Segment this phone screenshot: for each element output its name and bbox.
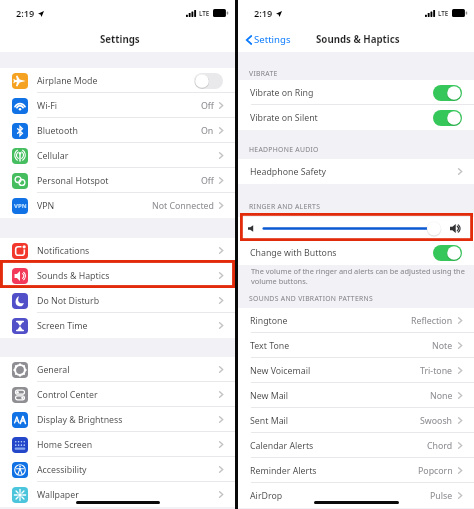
staticText: Bluetooth xyxy=(37,125,78,137)
staticText: Vibrate on Ring xyxy=(250,87,314,99)
staticText: Pulse xyxy=(430,490,453,502)
staticText: General xyxy=(37,364,70,376)
staticText: Home Screen xyxy=(37,439,93,451)
staticText: Cellular xyxy=(37,150,69,162)
staticText: LTE xyxy=(438,9,449,17)
staticText: RINGER AND ALERTS xyxy=(249,202,321,211)
button[interactable]: Notifications xyxy=(0,238,235,263)
button[interactable]: VPN xyxy=(0,193,235,218)
button[interactable]: Wallpaper xyxy=(0,482,235,507)
staticText: LTE xyxy=(199,9,210,17)
button[interactable]: Control Center xyxy=(0,382,235,407)
staticText: New Mail xyxy=(250,390,289,402)
button[interactable]: Accessibility xyxy=(0,457,235,482)
staticText: Accessibility xyxy=(37,464,87,476)
button[interactable]: Switch on xyxy=(433,85,462,101)
staticText: Vibrate on Silent xyxy=(250,112,318,124)
staticText: Airplane Mode xyxy=(37,75,98,87)
staticText: The volume of the ringer and alerts can … xyxy=(251,266,465,276)
staticText: Do Not Disturb xyxy=(37,295,100,307)
button[interactable]: Wi-Fi xyxy=(0,93,235,118)
staticText: Display & Brightness xyxy=(37,414,123,426)
staticText: HEADPHONE AUDIO xyxy=(249,145,319,154)
staticText: Wi-Fi xyxy=(37,100,58,112)
button[interactable]: Ringtone xyxy=(238,308,474,333)
staticText: VPN xyxy=(37,200,55,212)
staticText: On xyxy=(201,125,214,137)
button[interactable]: Airplane Mode xyxy=(0,68,235,93)
staticText: Off xyxy=(201,100,214,112)
button[interactable]: Personal Hotspot xyxy=(0,168,235,193)
staticText: Headphone Safety xyxy=(250,166,327,178)
button[interactable]: Do Not Disturb xyxy=(0,288,235,313)
staticText: 2:19 xyxy=(16,7,35,20)
button[interactable]: Text Tone xyxy=(238,333,474,358)
button[interactable]: Reminder Alerts xyxy=(238,458,474,483)
button[interactable]: Headphone Safety xyxy=(238,159,474,184)
button[interactable]: Home Screen xyxy=(0,432,235,457)
staticText: AirDrop xyxy=(250,490,283,502)
button[interactable]: Settings xyxy=(244,30,293,49)
button[interactable]: General xyxy=(0,357,235,382)
button[interactable]: Switch on xyxy=(433,110,462,126)
staticText: Reminder Alerts xyxy=(250,465,317,477)
staticText: Change with Buttons xyxy=(250,247,337,259)
staticText: New Voicemail xyxy=(250,365,311,377)
button[interactable]: Vibrate on Ring xyxy=(238,80,474,105)
button[interactable]: Switch off xyxy=(194,73,223,89)
button[interactable]: Cellular xyxy=(0,143,235,168)
button[interactable]: New Voicemail xyxy=(238,358,474,383)
staticText: Off xyxy=(201,175,214,187)
staticText: volume buttons. xyxy=(251,276,308,286)
button[interactable]: New Mail xyxy=(238,383,474,408)
button[interactable]: Sounds & Haptics xyxy=(0,263,235,288)
button[interactable]: Sent Mail xyxy=(238,408,474,433)
staticText: Tri-tone xyxy=(420,365,453,377)
staticText: Calendar Alerts xyxy=(250,440,314,452)
staticText: None xyxy=(430,390,453,402)
button[interactable]: Display & Brightness xyxy=(0,407,235,432)
button[interactable]: Change with Buttons xyxy=(238,240,474,265)
staticText: Sounds & Haptics xyxy=(316,33,400,46)
button[interactable]: Calendar Alerts xyxy=(238,433,474,458)
button[interactable]: Screen Time xyxy=(0,313,235,338)
button[interactable]: AirDrop xyxy=(238,483,474,508)
button[interactable]: Switch on xyxy=(433,245,462,261)
staticText: Chord xyxy=(427,440,453,452)
other: Ringer volume xyxy=(238,217,474,240)
staticText: Screen Time xyxy=(37,320,88,332)
staticText: Sent Mail xyxy=(250,415,289,427)
staticText: Swoosh xyxy=(420,415,453,427)
staticText: Popcorn xyxy=(418,465,453,477)
staticText: VIBRATE xyxy=(249,69,278,78)
staticText: 2:19 xyxy=(254,7,273,20)
staticText: Settings xyxy=(254,33,291,46)
staticText: VPN xyxy=(14,202,27,210)
staticText: Control Center xyxy=(37,389,98,401)
staticText: Wallpaper xyxy=(37,489,79,501)
staticText: Settings xyxy=(100,33,140,46)
staticText: Sounds & Haptics xyxy=(37,270,110,282)
button[interactable]: Vibrate on Silent xyxy=(238,105,474,130)
button[interactable]: Bluetooth xyxy=(0,118,235,143)
staticText: Reflection xyxy=(411,315,453,327)
staticText: Text Tone xyxy=(250,340,290,352)
staticText: Ringtone xyxy=(250,315,288,327)
staticText: SOUNDS AND VIBRATION PATTERNS xyxy=(249,294,374,303)
staticText: Not Connected xyxy=(152,200,214,212)
staticText: Note xyxy=(432,340,453,352)
staticText: Personal Hotspot xyxy=(37,175,109,187)
staticText: Notifications xyxy=(37,245,90,257)
